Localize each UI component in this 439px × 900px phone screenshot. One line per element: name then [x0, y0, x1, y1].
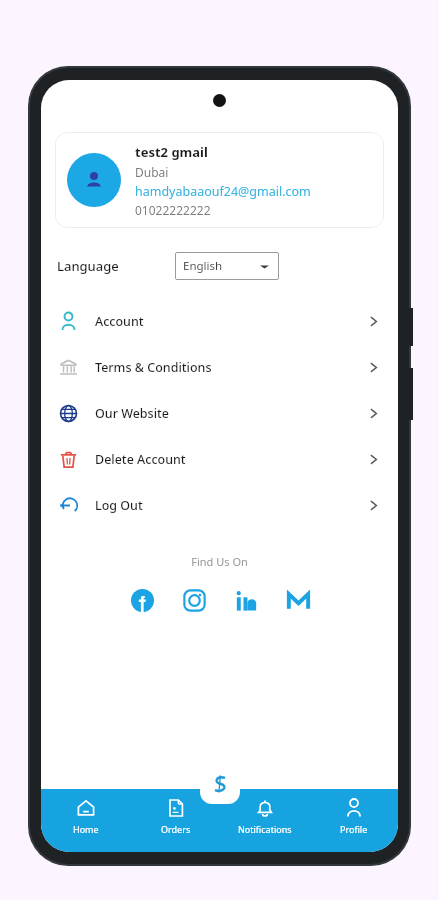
button[interactable]: test2 gmail	[55, 132, 384, 228]
staticText: Terms & Conditions	[95, 359, 212, 376]
button[interactable]: Account	[41, 298, 398, 344]
button[interactable]: Home	[41, 789, 131, 852]
button[interactable]: Terms & Conditions	[41, 344, 398, 390]
button[interactable]: Notifications	[220, 789, 309, 852]
staticText: English	[183, 258, 223, 274]
staticText: Log Out	[95, 497, 143, 514]
button[interactable]: LinkedIn	[231, 585, 261, 615]
staticText: Our Website	[95, 405, 170, 422]
staticText: 01022222222	[135, 202, 211, 218]
button[interactable]: Shop	[200, 764, 240, 804]
staticText: Orders	[161, 823, 191, 835]
staticText: Profile	[340, 823, 368, 835]
staticText: Home	[73, 823, 99, 835]
staticText: test2 gmail	[135, 143, 208, 161]
staticText: hamdyabaaouf24@gmail.com	[135, 183, 311, 200]
button[interactable]: Orders	[131, 789, 220, 852]
staticText: Language	[57, 257, 119, 275]
button[interactable]: Instagram	[179, 585, 209, 615]
staticText: Dubai	[135, 164, 169, 180]
button[interactable]: Email	[283, 585, 313, 615]
staticText: Find Us On	[41, 554, 398, 569]
staticText: Account	[95, 313, 144, 330]
staticText: Delete Account	[95, 451, 186, 468]
button[interactable]: Log Out	[41, 482, 398, 528]
button[interactable]: Facebook	[127, 585, 157, 615]
button[interactable]: Our Website	[41, 390, 398, 436]
button[interactable]: English	[175, 252, 279, 280]
staticText: Notifications	[238, 823, 292, 835]
button[interactable]: Profile	[309, 789, 398, 852]
button[interactable]: Delete Account	[41, 436, 398, 482]
